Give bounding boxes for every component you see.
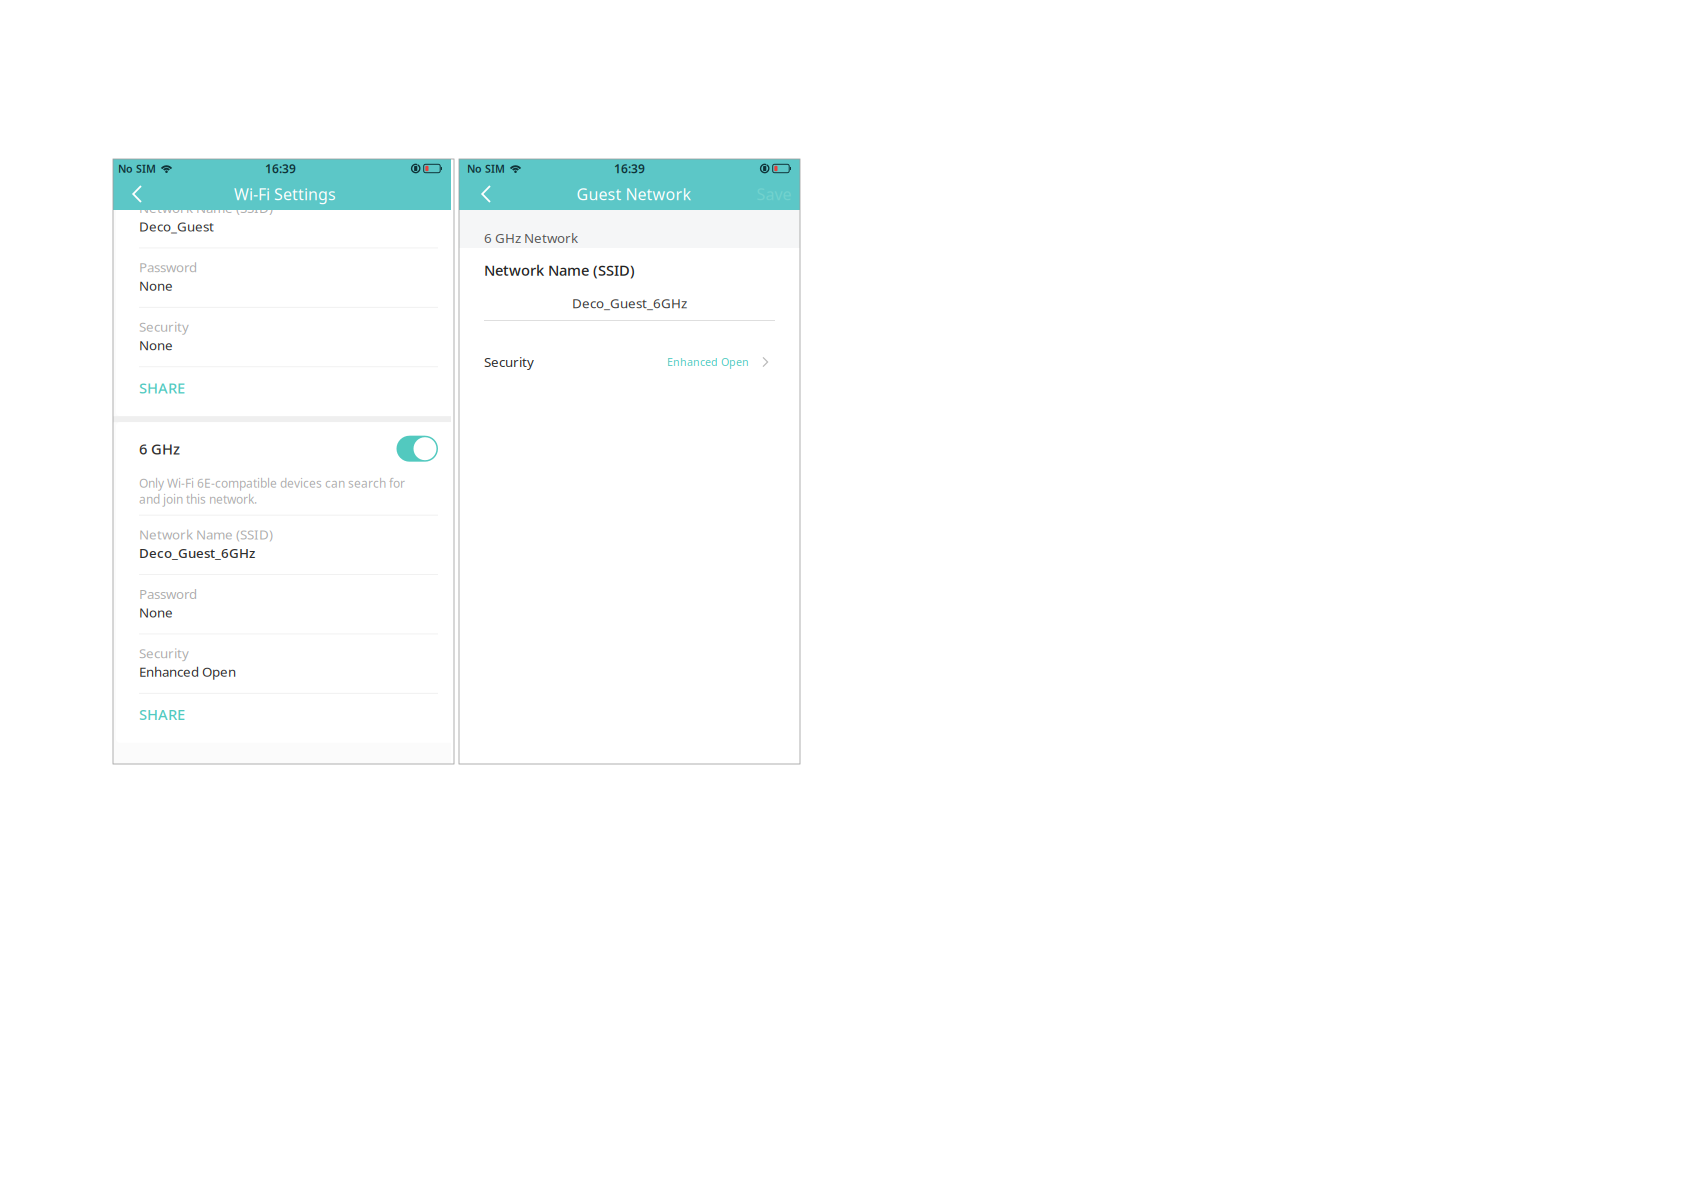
staticText: 16:39	[614, 160, 645, 176]
staticText: 6 GHz	[139, 439, 180, 458]
button[interactable]: SHARE	[139, 694, 420, 743]
staticText: Enhanced Open	[667, 355, 749, 369]
staticText: Security	[139, 318, 189, 335]
button[interactable]: Save	[748, 178, 800, 210]
staticText: Network Name (SSID)	[139, 199, 273, 217]
button[interactable]: Security	[459, 348, 800, 376]
staticText: None	[139, 277, 173, 294]
staticText: Security	[139, 644, 189, 662]
staticText: Only Wi-Fi 6E-compatible devices can sea…	[139, 475, 405, 507]
staticText: No SIM	[467, 161, 505, 176]
staticText: Deco_Guest_6GHz	[572, 294, 687, 312]
staticText: 6 GHz Network	[484, 229, 578, 247]
staticText: Network Name (SSID)	[484, 260, 635, 280]
staticText: Wi-Fi Settings	[234, 183, 336, 205]
button[interactable]: Back	[459, 178, 513, 210]
staticText: Enhanced Open	[139, 663, 236, 680]
staticText: None	[139, 336, 173, 354]
staticText: Security	[484, 353, 534, 371]
button[interactable]: 6 GHz toggle	[396, 436, 438, 462]
staticText: 16:39	[265, 160, 296, 176]
staticText: SHARE	[139, 378, 185, 397]
staticText: No SIM	[118, 161, 156, 176]
staticText: Save	[756, 183, 791, 205]
button[interactable]: Back	[110, 178, 164, 210]
staticText: None	[139, 603, 173, 621]
staticText: Deco_Guest_6GHz	[139, 544, 255, 562]
staticText: SHARE	[139, 705, 185, 724]
staticText: Password	[139, 585, 197, 603]
staticText: Network Name (SSID)	[139, 525, 273, 543]
button[interactable]: SHARE	[139, 367, 420, 416]
staticText: Guest Network	[576, 183, 691, 205]
staticText: Password	[139, 258, 197, 276]
staticText: Deco_Guest	[139, 217, 214, 235]
